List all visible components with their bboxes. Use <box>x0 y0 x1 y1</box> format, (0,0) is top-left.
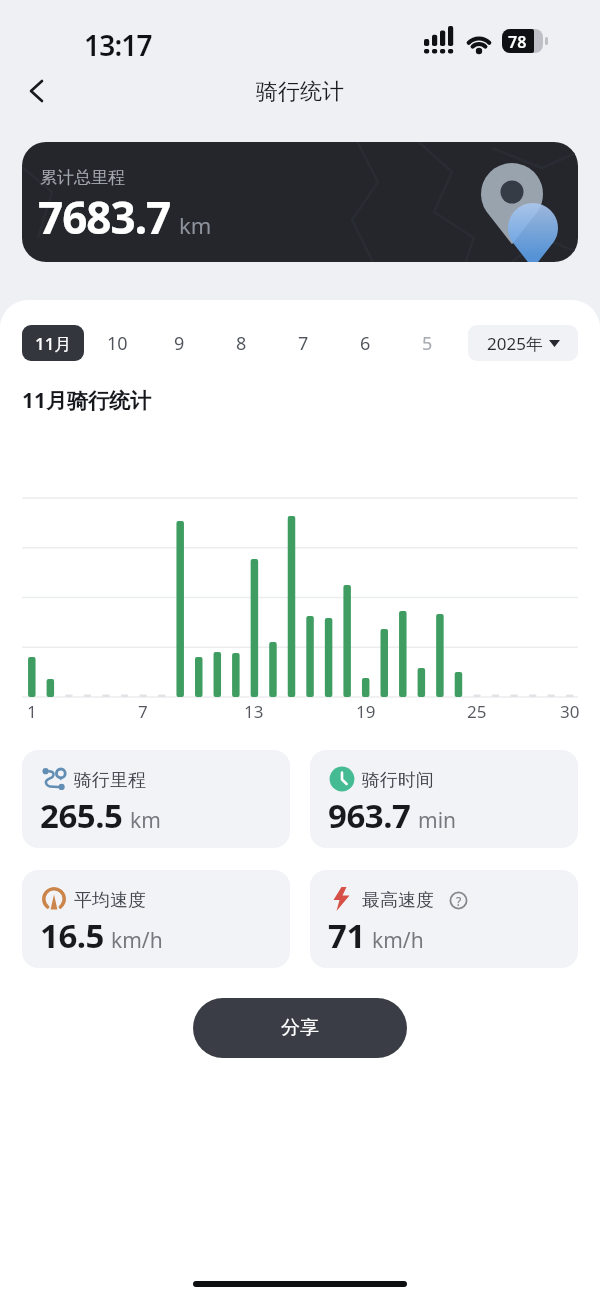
staticText: km/h <box>111 926 163 955</box>
staticText: 19 <box>356 700 376 723</box>
staticText: 11月 <box>35 332 72 355</box>
button[interactable]: 6 <box>343 325 387 361</box>
staticText: km <box>130 806 161 835</box>
button[interactable]: 9 <box>157 325 201 361</box>
staticText: 7 <box>138 700 148 723</box>
staticText: 78 <box>508 31 527 53</box>
button[interactable]: 10 <box>95 325 139 361</box>
button[interactable]: 分享 <box>193 998 407 1058</box>
staticText: 30 <box>560 700 580 723</box>
button[interactable]: 骑行时间 <box>310 750 578 848</box>
staticText: 16.5 <box>40 913 104 958</box>
button[interactable]: 2025年 <box>468 325 578 361</box>
staticText: 5 <box>422 331 433 356</box>
button[interactable]: 5 <box>405 325 449 361</box>
staticText: 265.5 <box>40 793 123 838</box>
staticText: 71 <box>328 913 365 958</box>
staticText: km <box>179 210 212 240</box>
staticText: 最高速度 <box>362 889 434 912</box>
staticText: 10 <box>107 331 128 356</box>
staticText: 1 <box>27 700 37 723</box>
staticText: 8 <box>236 331 247 356</box>
staticText: 9 <box>174 331 185 356</box>
staticText: 累计总里程 <box>40 167 125 188</box>
button[interactable]: 7 <box>281 325 325 361</box>
staticText: 7 <box>298 331 309 356</box>
staticText: 11月骑行统计 <box>22 386 152 415</box>
staticText: 963.7 <box>328 793 411 838</box>
staticText: km/h <box>372 926 424 955</box>
staticText: 2025年 <box>487 332 543 355</box>
button[interactable]: 累计总里程 <box>22 142 578 262</box>
staticText: 平均速度 <box>74 889 146 912</box>
staticText: 13 <box>244 700 264 723</box>
staticText: 骑行时间 <box>362 769 434 792</box>
button[interactable] <box>28 79 46 103</box>
button[interactable]: 最高速度 <box>310 870 578 968</box>
staticText: ? <box>456 893 462 909</box>
staticText: 6 <box>360 331 371 356</box>
staticText: 13:17 <box>84 26 152 64</box>
staticText: 骑行统计 <box>0 78 600 106</box>
button[interactable]: 骑行里程 <box>22 750 290 848</box>
button[interactable]: 平均速度 <box>22 870 290 968</box>
staticText: 骑行里程 <box>74 769 146 792</box>
button[interactable]: 8 <box>219 325 263 361</box>
button[interactable]: 11月 <box>22 325 84 361</box>
staticText: 分享 <box>281 1016 319 1040</box>
staticText: min <box>418 806 457 835</box>
staticText: 7683.7 <box>38 187 171 247</box>
staticText: 25 <box>467 700 487 723</box>
